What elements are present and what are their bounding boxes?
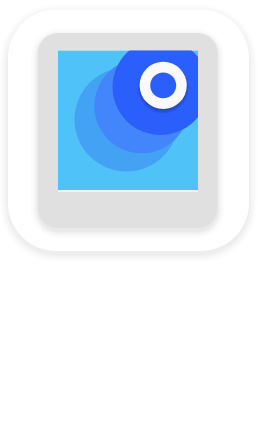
button[interactable]: PhotoScan app icon bbox=[0, 0, 258, 446]
